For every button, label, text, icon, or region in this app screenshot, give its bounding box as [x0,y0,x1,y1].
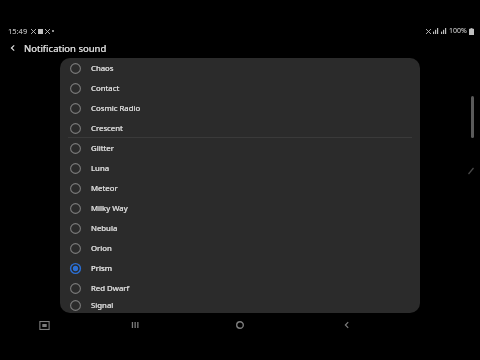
button[interactable]: Back [8,40,107,56]
staticText: Luna [91,163,110,174]
staticText: Cosmic Radio [91,103,141,114]
staticText: Meteor [91,183,118,194]
button[interactable]: Milky Way [60,198,420,218]
staticText: Glitter [91,143,114,154]
button[interactable]: Signal [60,298,420,313]
button[interactable]: Hide keyboard [35,316,53,334]
button[interactable]: Red Dwarf [60,278,420,298]
staticText: Crescent [91,123,123,134]
staticText: Orion [91,243,112,254]
staticText: Signal [91,300,114,311]
button[interactable]: Cosmic Radio [60,98,420,118]
staticText: Contact [91,83,120,94]
staticText: Red Dwarf [91,283,130,294]
staticText: 15:49 [8,26,28,36]
staticText: Nebula [91,223,118,234]
button[interactable]: Contact [60,78,420,98]
button[interactable]: Meteor [60,178,420,198]
staticText: Notification sound [24,42,107,55]
staticText: Prism [91,263,112,274]
staticText: Chaos [91,63,114,74]
button[interactable]: Chaos [60,58,420,78]
button[interactable]: Home [231,316,249,334]
staticText: 100% [449,26,467,36]
button[interactable]: Nebula [60,218,420,238]
button[interactable]: Luna [60,158,420,178]
button[interactable]: Back [338,316,356,334]
button[interactable]: Recent apps [126,316,144,334]
button[interactable]: Orion [60,238,420,258]
staticText: Milky Way [91,203,128,214]
button[interactable]: Crescent [60,118,420,138]
button[interactable]: Glitter [60,138,420,158]
button[interactable]: Prism [60,258,420,278]
